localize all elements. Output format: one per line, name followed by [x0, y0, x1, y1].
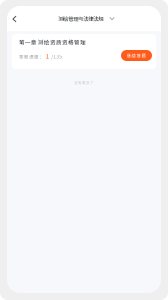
button[interactable]: Back	[8, 9, 21, 28]
button[interactable]: 继续答题	[121, 50, 152, 61]
staticText: 1	[46, 51, 50, 60]
staticText: 继续答题	[126, 52, 146, 59]
staticText: 第一章 测绘资质资格管理	[19, 38, 86, 46]
staticText: 答题进度：	[19, 53, 44, 60]
staticText: 没有更多了	[74, 80, 94, 85]
staticText: 测绘管理与法律法规	[58, 14, 103, 22]
staticText: /135	[51, 53, 62, 60]
